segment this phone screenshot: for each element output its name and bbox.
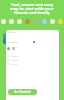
button[interactable]: Sticker <box>25 19 30 24</box>
button[interactable]: Sticker <box>50 19 55 24</box>
button[interactable]: Sticker <box>58 19 63 24</box>
button[interactable] <box>7 58 59 62</box>
button[interactable] <box>7 54 59 58</box>
staticText: Get Started <box>14 90 31 94</box>
button[interactable]: Sticker <box>9 19 14 24</box>
button[interactable]: Sticker <box>34 19 39 24</box>
button[interactable]: Sticker <box>17 19 22 24</box>
button[interactable]: Sticker <box>1 19 6 24</box>
staticText: Fast, secure and easy way to chat with y… <box>10 2 54 15</box>
button[interactable] <box>7 62 59 66</box>
button[interactable]: Get Started <box>8 89 37 95</box>
button[interactable]: Sticker <box>42 19 47 24</box>
